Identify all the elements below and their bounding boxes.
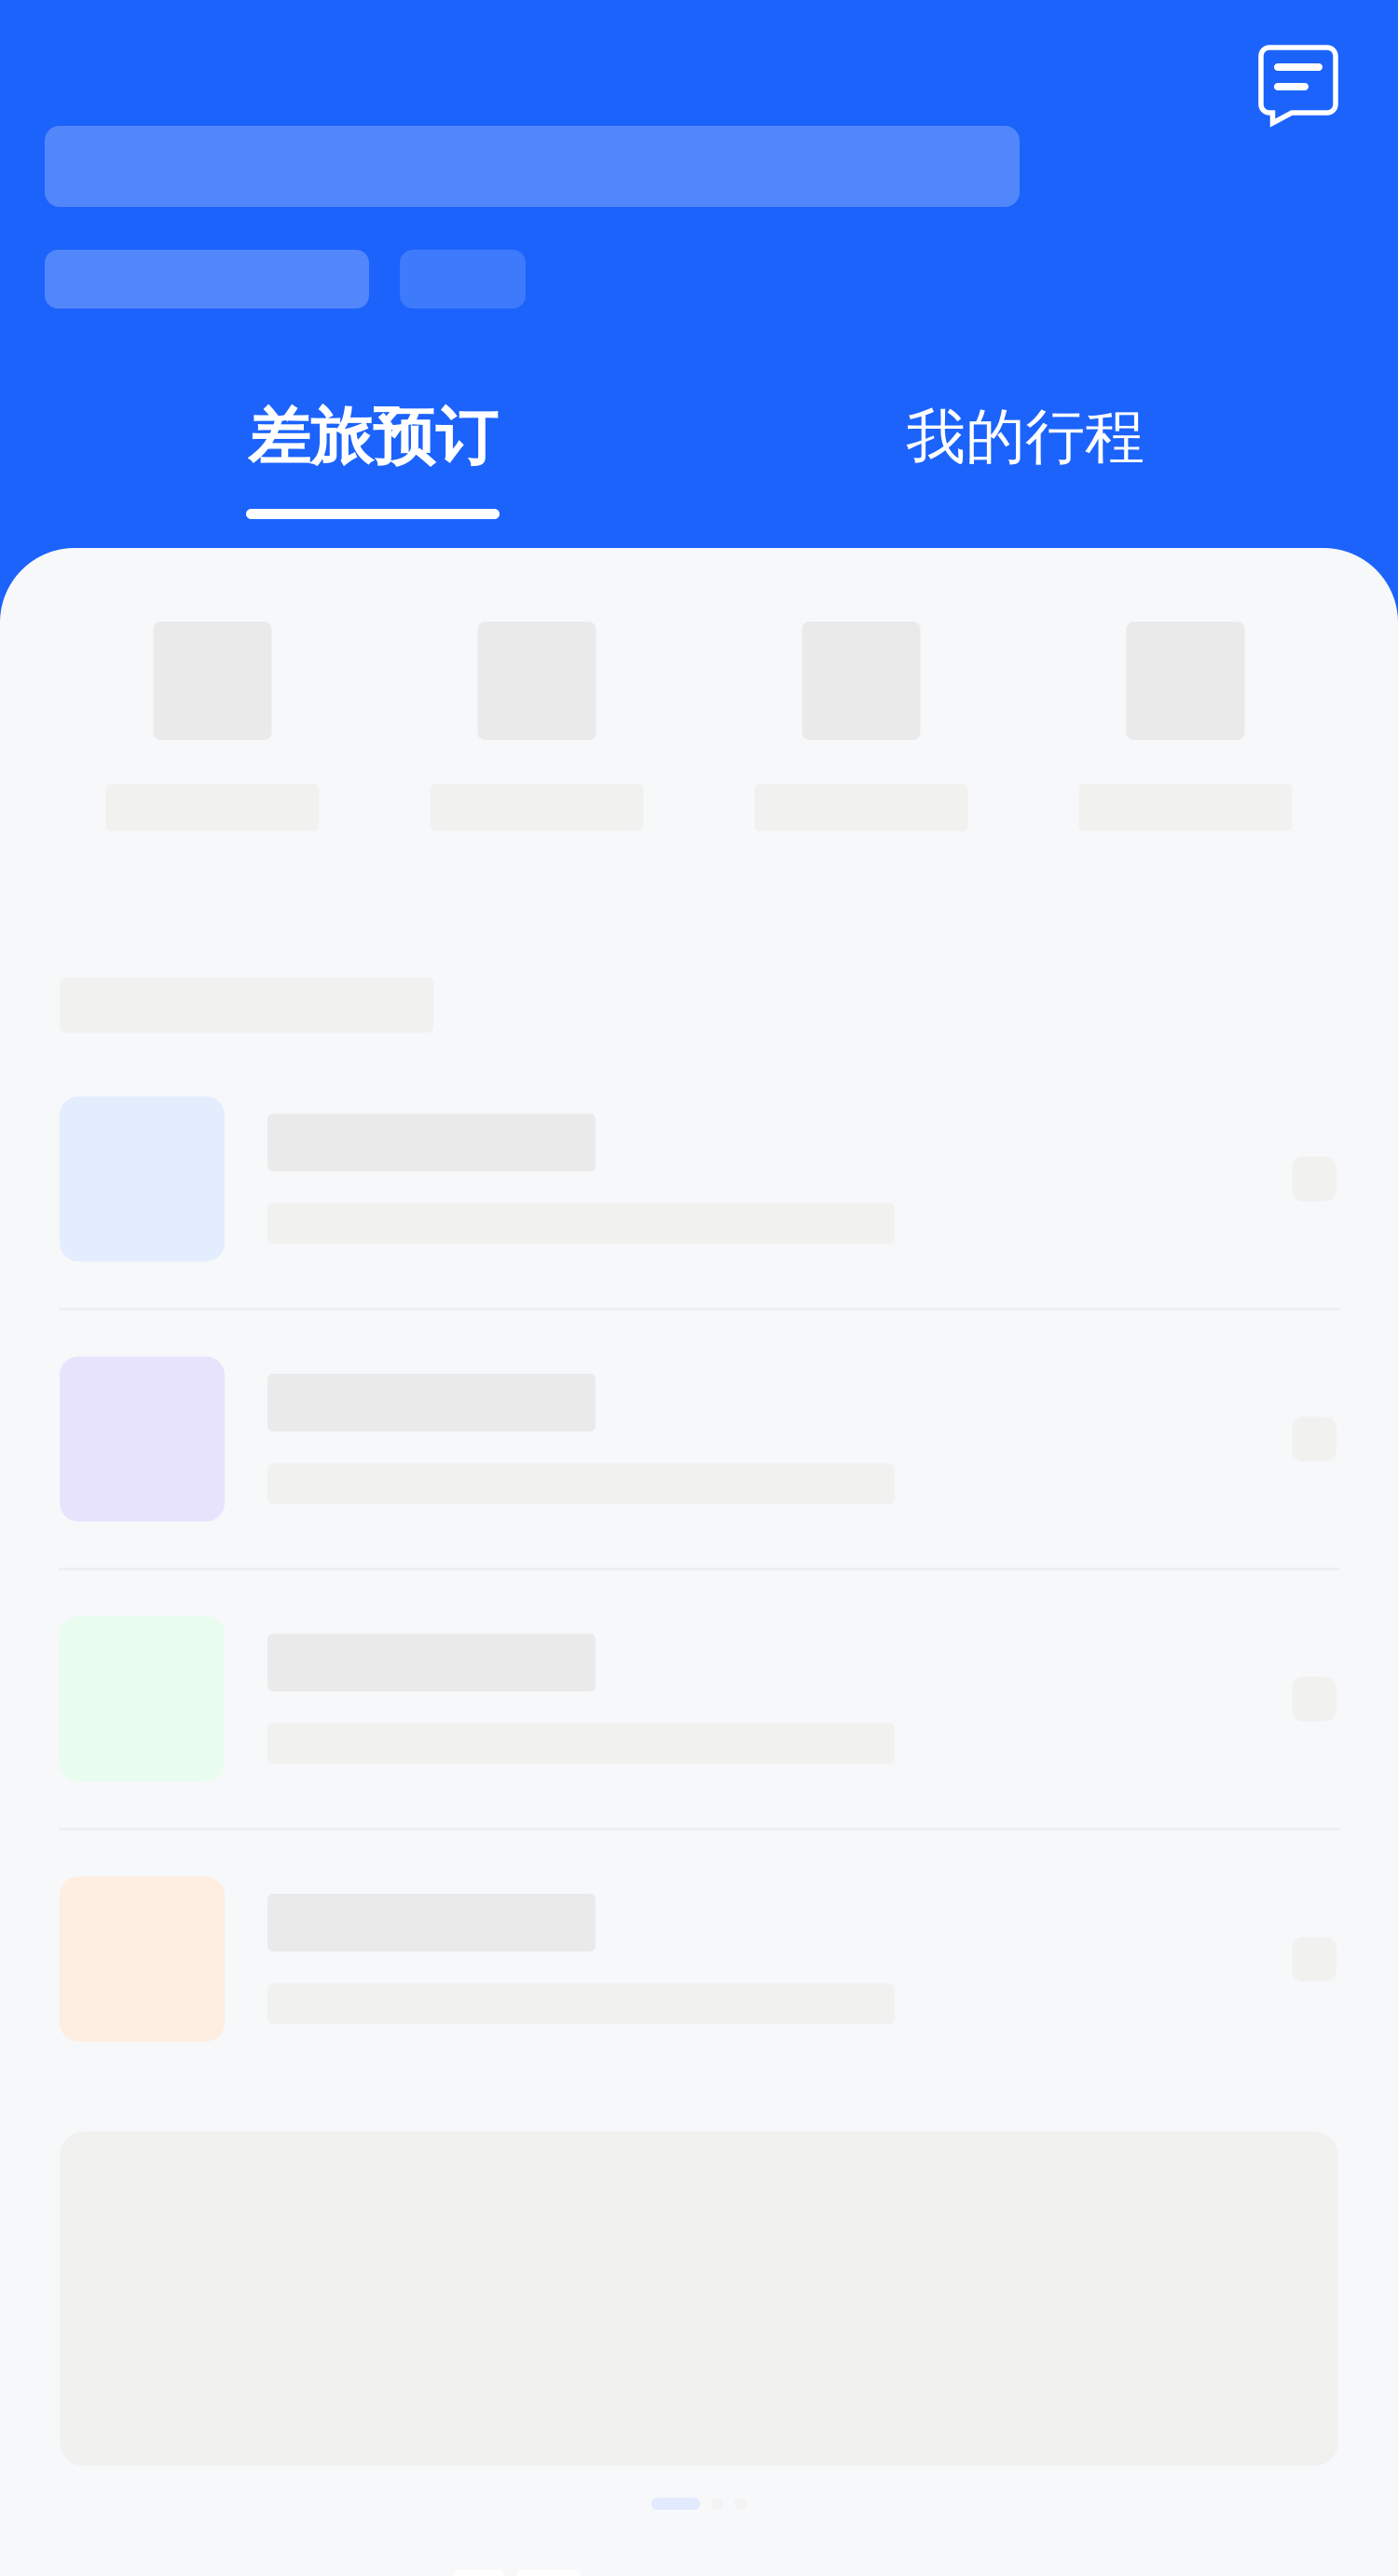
button[interactable]: 我的行程 [746, 400, 1305, 549]
button[interactable]: 差旅预订 [0, 400, 746, 549]
button[interactable]: Category [1023, 622, 1348, 831]
button[interactable]: Item [0, 1570, 1398, 1828]
button[interactable]: Category [50, 622, 375, 831]
staticText: 我的行程 [906, 400, 1144, 475]
button[interactable]: Item [0, 1050, 1398, 1308]
button[interactable]: Item [0, 1310, 1398, 1568]
button[interactable]: Messages [1233, 0, 1398, 126]
button[interactable]: Category [699, 622, 1023, 831]
button[interactable]: Category [375, 622, 699, 831]
button[interactable]: Item [0, 1830, 1398, 2088]
staticText: 差旅预订 [248, 398, 498, 476]
